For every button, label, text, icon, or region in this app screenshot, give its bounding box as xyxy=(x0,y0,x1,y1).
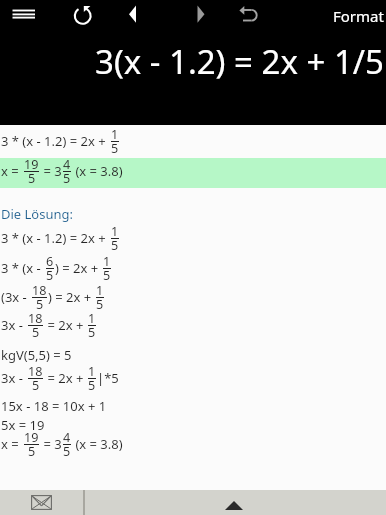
staticText: 5 xyxy=(103,267,111,284)
staticText: 5 xyxy=(36,296,44,313)
staticText: 1 xyxy=(88,363,96,380)
staticText: 5 xyxy=(96,296,104,313)
staticText: 5 xyxy=(88,377,96,394)
staticText: x = xyxy=(1,435,23,453)
staticText: 5x = 19 xyxy=(1,416,45,434)
staticText: = 3 xyxy=(40,162,62,180)
staticText: 3x - xyxy=(1,316,27,334)
staticText: ) = 2x + xyxy=(48,288,95,306)
staticText: ) = 2x + xyxy=(55,259,102,277)
staticText: 3 * (x - 1.2) = 2x + xyxy=(1,229,110,247)
staticText: 6 xyxy=(46,253,54,270)
staticText: 5 xyxy=(28,170,36,187)
staticText: 5 xyxy=(111,237,119,254)
staticText: 4 xyxy=(63,429,71,446)
staticText: (x = 3.8) xyxy=(72,435,123,453)
staticText: 5 xyxy=(32,324,40,341)
staticText: 19 xyxy=(24,429,39,446)
staticText: 4 xyxy=(63,156,71,173)
staticText: 3 * (x - xyxy=(1,259,45,277)
staticText: 1 xyxy=(96,282,104,299)
button[interactable]: Format xyxy=(331,6,386,26)
staticText: 5 xyxy=(63,170,71,187)
button[interactable]: Mail xyxy=(0,490,83,515)
staticText: 1 xyxy=(88,310,96,327)
staticText: 5 xyxy=(28,443,36,460)
staticText: 3(x - 1.2) = 2x + 1/5 xyxy=(95,39,384,84)
staticText: 18 xyxy=(32,282,47,299)
staticText: |*5 xyxy=(97,369,119,387)
staticText: 18 xyxy=(28,363,43,380)
staticText: = 2x + xyxy=(44,316,87,334)
button[interactable]: Menu xyxy=(6,1,40,29)
staticText: (3x - xyxy=(1,288,31,306)
staticText: x = xyxy=(1,162,23,180)
staticText: Die Lösung: xyxy=(1,205,74,223)
staticText: 1 xyxy=(103,253,111,270)
staticText: 3x - xyxy=(1,369,27,387)
staticText: (x = 3.8) xyxy=(72,162,123,180)
staticText: Format xyxy=(333,6,384,26)
staticText: = 3 xyxy=(40,435,62,453)
staticText: 5 xyxy=(46,267,54,284)
staticText: 5 xyxy=(63,443,71,460)
staticText: 5 xyxy=(88,324,96,341)
button[interactable]: Refresh xyxy=(67,0,97,30)
staticText: 5 xyxy=(111,140,119,157)
button[interactable]: Expand keyboard xyxy=(85,490,386,515)
button[interactable]: Next step xyxy=(190,0,216,30)
staticText: 15x - 18 = 10x + 1 xyxy=(1,397,107,415)
staticText: 1 xyxy=(111,126,119,143)
staticText: 3 * (x - 1.2) = 2x + xyxy=(1,132,110,150)
button[interactable]: Undo xyxy=(232,0,262,30)
button[interactable]: Previous step xyxy=(122,0,148,30)
staticText: 5 xyxy=(32,377,40,394)
staticText: = 2x + xyxy=(44,369,87,387)
staticText: 1 xyxy=(111,223,119,240)
staticText: 18 xyxy=(28,310,43,327)
staticText: kgV(5,5) = 5 xyxy=(1,346,72,364)
staticText: 19 xyxy=(24,156,39,173)
